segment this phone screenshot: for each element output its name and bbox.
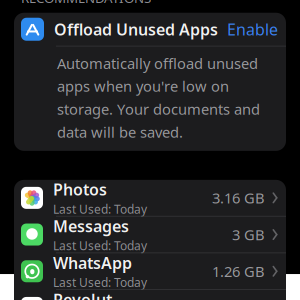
staticText: Last Used: Today — [53, 274, 147, 290]
button[interactable]: Offload Unused Apps — [14, 13, 286, 46]
button[interactable]: Photos — [14, 180, 286, 216]
staticText: RECOMMENDATIONS — [21, 0, 151, 7]
staticText: 3.16 GB — [212, 188, 265, 208]
staticText: Last Used: Today — [53, 238, 147, 254]
button[interactable]: WhatsApp — [14, 253, 286, 289]
staticText: WhatsApp — [53, 252, 132, 273]
staticText: Offload Unused Apps — [54, 19, 218, 40]
staticText: Last Used: Today — [53, 201, 147, 217]
staticText: 1.26 GB — [212, 261, 265, 281]
button[interactable]: R — [14, 290, 286, 300]
staticText: Messages — [53, 215, 129, 237]
staticText: Photos — [53, 179, 107, 200]
staticText: Automatically offload unused apps when y… — [57, 53, 260, 142]
button[interactable]: Messages — [14, 217, 286, 253]
staticText: Enable — [227, 19, 278, 40]
staticText: Revolut — [53, 289, 112, 300]
staticText: 3 GB — [232, 225, 265, 244]
